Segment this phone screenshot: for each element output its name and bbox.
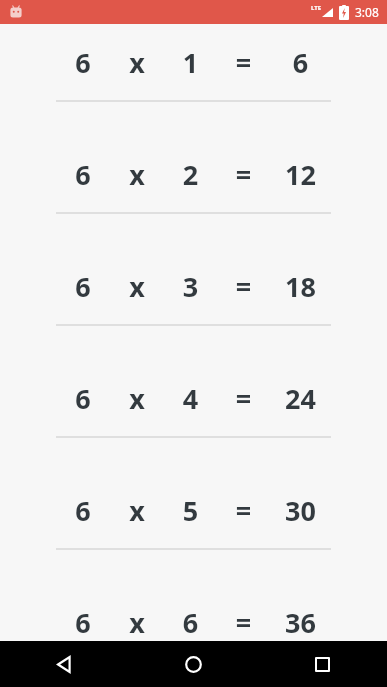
staticText: 6 <box>164 604 217 641</box>
staticText: = <box>217 268 270 305</box>
staticText: 24 <box>270 380 331 417</box>
staticText: x <box>110 44 164 81</box>
staticText: = <box>217 44 270 81</box>
button[interactable]: 6 <box>0 472 387 584</box>
staticText: 6 <box>270 44 331 81</box>
staticText: x <box>110 268 164 305</box>
staticText: = <box>217 492 270 529</box>
button[interactable]: 6 <box>0 24 387 136</box>
staticText: 6 <box>56 380 110 417</box>
staticText: = <box>217 156 270 193</box>
staticText: LTE <box>311 4 322 12</box>
staticText: 6 <box>56 268 110 305</box>
button[interactable]: Recent apps <box>258 641 387 687</box>
staticText: 1 <box>164 44 217 81</box>
staticText: x <box>110 156 164 193</box>
staticText: x <box>110 604 164 641</box>
button[interactable]: 6 <box>0 248 387 360</box>
staticText: 18 <box>270 268 331 305</box>
button[interactable]: 6 <box>0 584 387 687</box>
staticText: 36 <box>270 604 331 641</box>
staticText: 6 <box>56 156 110 193</box>
button[interactable]: Back <box>0 641 129 687</box>
staticText: 5 <box>164 492 217 529</box>
button[interactable]: Home <box>129 641 258 687</box>
staticText: 3:08 <box>355 4 379 20</box>
staticText: = <box>217 380 270 417</box>
staticText: 30 <box>270 492 331 529</box>
staticText: 4 <box>164 380 217 417</box>
staticText: 12 <box>270 156 331 193</box>
staticText: = <box>217 604 270 641</box>
staticText: 2 <box>164 156 217 193</box>
button[interactable]: 6 <box>0 360 387 472</box>
staticText: 6 <box>56 492 110 529</box>
staticText: 6 <box>56 604 110 641</box>
staticText: 3 <box>164 268 217 305</box>
staticText: x <box>110 492 164 529</box>
button[interactable]: 6 <box>0 136 387 248</box>
staticText: x <box>110 380 164 417</box>
staticText: 6 <box>56 44 110 81</box>
